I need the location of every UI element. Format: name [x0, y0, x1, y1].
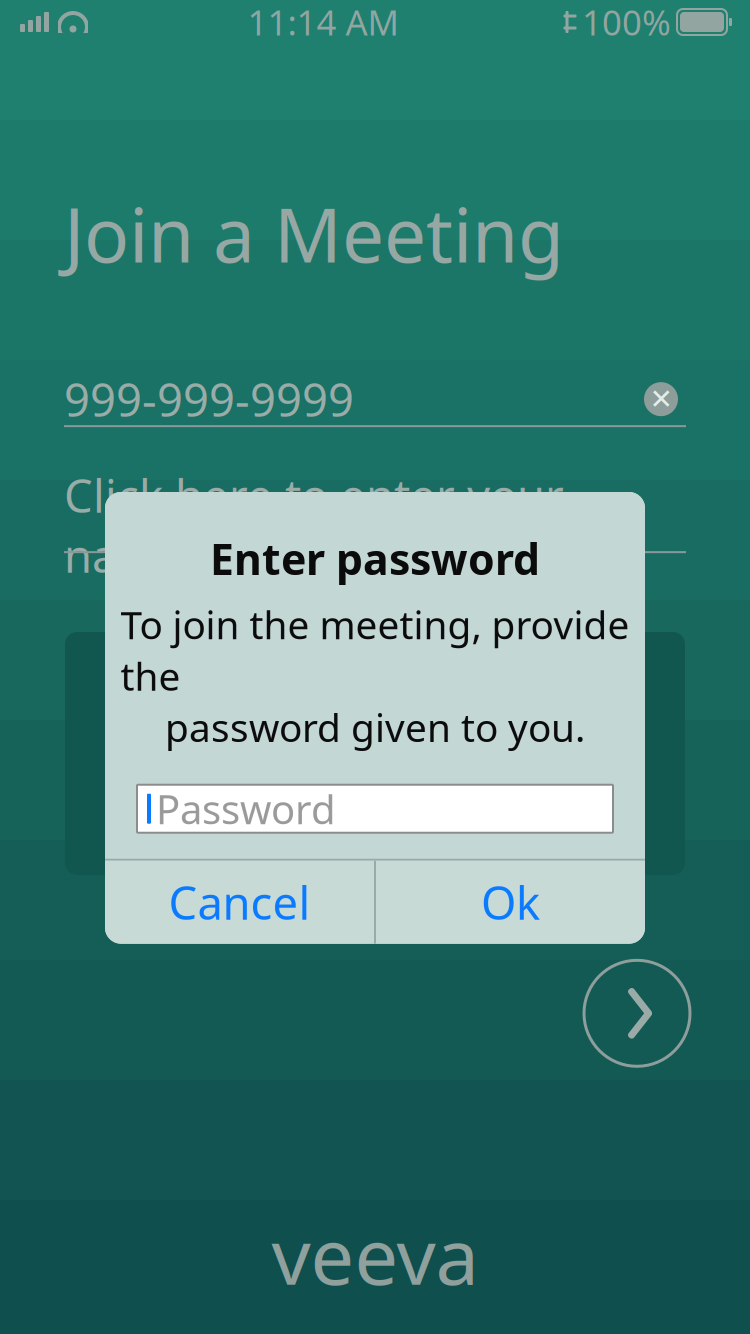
staticText: veeva [271, 1203, 478, 1306]
staticText: 999-999-9999 [64, 369, 354, 429]
staticText: Password [156, 782, 336, 835]
staticText: password given to you. [165, 701, 585, 753]
staticText: Ok [481, 872, 540, 932]
staticText: 100% [582, 0, 671, 45]
staticText: ✕ [649, 383, 672, 415]
staticText: Click here to enter your name [64, 465, 564, 585]
staticText: Cancel [168, 872, 310, 932]
staticText: Enter password [210, 530, 540, 587]
staticText: 11:14 AM [247, 0, 398, 45]
button[interactable]: Clear meeting number [636, 374, 686, 424]
button[interactable]: Ok [376, 861, 645, 944]
button[interactable]: Cancel [105, 861, 374, 944]
button[interactable]: Join meeting [577, 953, 697, 1073]
staticText: To join the meeting, provide the [120, 599, 629, 701]
staticText: Join a Meeting [64, 184, 564, 283]
